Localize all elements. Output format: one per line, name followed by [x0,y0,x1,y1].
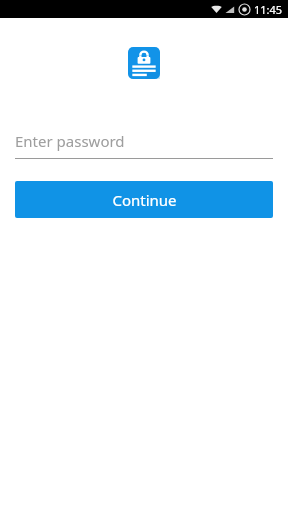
staticText: 11:45 [254,2,283,17]
staticText: Enter password [15,131,125,151]
button[interactable]: Enter password [15,131,273,159]
button[interactable]: Continue [15,181,273,218]
staticText: Continue [112,190,177,210]
